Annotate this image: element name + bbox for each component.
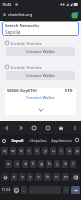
button[interactable]: Appliances — [49, 134, 73, 146]
staticText: 58008 (SepETH) — [7, 88, 37, 93]
button[interactable]: More options — [68, 121, 81, 134]
staticText: x — [21, 174, 24, 180]
staticText: d — [24, 161, 27, 167]
staticText: , — [23, 187, 25, 193]
staticText: e — [20, 148, 23, 154]
staticText: Sepolia — [5, 29, 21, 35]
button[interactable]: v — [35, 173, 42, 181]
button[interactable]: . — [63, 186, 69, 194]
staticText: p — [76, 148, 79, 154]
button[interactable]: e — [18, 147, 24, 155]
staticText: Search Networks — [5, 23, 39, 28]
button[interactable]: Sepoli — [7, 134, 27, 146]
staticText: Connect Wallet — [26, 95, 55, 100]
staticText: i — [60, 148, 62, 154]
button[interactable]: r — [26, 147, 32, 155]
staticText: h — [48, 161, 51, 167]
button[interactable]: Back — [0, 121, 13, 134]
staticText: t — [36, 148, 38, 154]
button[interactable]: , — [21, 186, 27, 194]
staticText: g — [40, 161, 43, 167]
button[interactable]: j — [54, 160, 60, 168]
button[interactable]: Search Networks — [2, 21, 79, 36]
button[interactable]: n — [53, 173, 60, 181]
button[interactable]: m — [62, 173, 69, 181]
staticText: ETH — [65, 88, 73, 93]
button[interactable]: Expand — [37, 108, 45, 112]
staticText: c — [29, 174, 32, 180]
button[interactable]: Backspace — [71, 173, 80, 181]
button[interactable]: a — [5, 160, 12, 168]
staticText: a — [7, 161, 10, 167]
button[interactable]: s — [14, 160, 20, 168]
button[interactable]: w — [10, 147, 16, 155]
staticText: l — [72, 161, 74, 167]
button[interactable]: More suggestions — [73, 136, 81, 144]
staticText: j — [56, 161, 58, 167]
button[interactable]: Emoji — [13, 186, 19, 194]
button[interactable]: Refresh — [27, 121, 40, 134]
button[interactable]: t — [34, 147, 40, 155]
button[interactable]: q — [1, 147, 8, 155]
button[interactable]: Connect Wallet — [6, 47, 75, 56]
staticText: s — [16, 161, 19, 167]
button[interactable]: p — [74, 147, 80, 155]
staticText: r — [28, 148, 30, 154]
staticText: Appliances — [51, 138, 72, 143]
staticText: w — [11, 148, 15, 154]
button[interactable]: b — [44, 173, 51, 181]
staticText: o — [68, 148, 71, 154]
staticText: Connect Wallet — [26, 49, 55, 54]
button[interactable]: Include Testnets — [5, 40, 81, 46]
button[interactable]: x — [19, 173, 25, 181]
staticText: Include Testnets — [11, 65, 42, 70]
button[interactable]: d — [22, 160, 28, 168]
button[interactable]: z — [11, 173, 17, 181]
staticText: v — [37, 174, 40, 180]
staticText: b — [46, 174, 49, 180]
button[interactable]: Shift — [1, 173, 9, 181]
button[interactable]: i — [58, 147, 64, 155]
staticText: k — [64, 161, 67, 167]
staticText: q — [3, 148, 6, 154]
staticText: Include Testnets — [11, 41, 42, 46]
staticText: Connect Wallet — [26, 73, 55, 78]
button[interactable]: o — [66, 147, 72, 155]
button[interactable]: g — [38, 160, 44, 168]
button[interactable]: u — [50, 147, 56, 155]
staticText: Sepoli — [11, 138, 24, 143]
staticText: «Sepolia» — [29, 138, 47, 143]
staticText: y — [44, 148, 47, 154]
button[interactable]: c — [27, 173, 33, 181]
staticText: f — [32, 161, 34, 167]
button[interactable]: y — [42, 147, 48, 155]
button[interactable]: k — [62, 160, 68, 168]
button[interactable]: f — [30, 160, 36, 168]
button[interactable]: Forward — [14, 121, 27, 134]
button[interactable]: Tabs — [41, 121, 54, 134]
staticText: m — [64, 174, 68, 180]
button[interactable]: «Sepolia» — [27, 134, 49, 146]
button[interactable]: Keyboard settings — [0, 137, 7, 144]
staticText: z — [13, 174, 15, 180]
button[interactable]: l — [70, 160, 76, 168]
staticText: 10:45 — [2, 2, 12, 7]
button[interactable]: Profile — [71, 11, 79, 19]
staticText: u — [52, 148, 55, 154]
staticText: . — [65, 187, 67, 193]
button[interactable]: Connect Wallet — [6, 71, 75, 80]
button[interactable]: Enter — [71, 186, 80, 194]
button[interactable]: Connect Wallet — [24, 94, 57, 101]
button[interactable]: ?123 — [1, 186, 11, 194]
button[interactable]: h — [46, 160, 52, 168]
staticText: chainlist.org — [8, 12, 33, 18]
staticText: ?123 — [1, 187, 11, 193]
button[interactable]: Include Testnets — [5, 64, 81, 70]
staticText: n — [55, 174, 58, 180]
button[interactable]: Home — [54, 121, 67, 134]
